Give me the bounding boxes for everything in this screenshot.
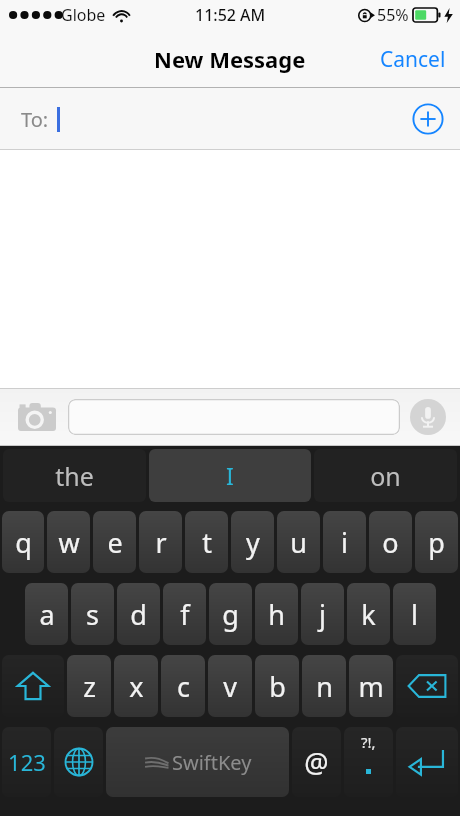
staticText: on — [370, 459, 401, 493]
staticText: c — [177, 668, 190, 705]
staticText: s — [86, 596, 99, 633]
staticText: z — [83, 668, 96, 705]
staticText: j — [319, 596, 326, 633]
button[interactable]: @ — [292, 727, 341, 797]
button[interactable]: Add contact — [412, 103, 444, 135]
button[interactable]: y — [231, 511, 274, 573]
button[interactable] — [68, 399, 400, 435]
button[interactable]: 123 — [2, 727, 51, 797]
staticText: a — [39, 596, 55, 633]
staticText: q — [15, 524, 32, 561]
staticText: r — [155, 524, 167, 561]
staticText: the — [55, 459, 94, 493]
staticText: x — [129, 668, 144, 705]
staticText: Cancel — [380, 45, 446, 74]
staticText: 11:52 AM — [195, 4, 266, 26]
button[interactable]: f — [163, 583, 206, 645]
staticText: h — [268, 596, 285, 633]
button[interactable]: u — [277, 511, 320, 573]
button[interactable]: s — [71, 583, 114, 645]
staticText: f — [180, 596, 190, 633]
button[interactable]: the — [3, 449, 146, 502]
staticText: @ — [304, 744, 329, 781]
button[interactable]: i — [323, 511, 366, 573]
button[interactable]: j — [301, 583, 344, 645]
button[interactable]: Backspace — [396, 655, 458, 717]
button[interactable]: Voice input — [410, 399, 446, 435]
staticText: w — [58, 524, 80, 561]
staticText: g — [222, 596, 239, 633]
staticText: v — [223, 668, 237, 705]
button[interactable]: h — [255, 583, 298, 645]
staticText: SwiftKey — [172, 749, 252, 776]
button[interactable]: r — [139, 511, 182, 573]
staticText: l — [411, 596, 418, 633]
staticText: t — [202, 524, 212, 561]
button[interactable]: o — [369, 511, 412, 573]
staticText: I — [226, 460, 234, 491]
staticText: p — [428, 524, 445, 561]
staticText: e — [107, 524, 123, 561]
staticText: i — [341, 524, 348, 561]
staticText: d — [130, 596, 147, 633]
button[interactable]: Shift — [2, 655, 64, 717]
button[interactable]: on — [314, 449, 457, 502]
staticText: 55% — [377, 4, 409, 26]
button[interactable]: q — [2, 511, 44, 573]
staticText: Globe — [61, 4, 106, 26]
button[interactable]: Change language — [54, 727, 103, 797]
staticText: b — [269, 668, 286, 705]
staticText: u — [290, 524, 307, 561]
button[interactable]: Cancel — [366, 35, 460, 84]
button[interactable]: I — [149, 449, 311, 502]
button[interactable]: d — [117, 583, 160, 645]
button[interactable]: Space — [106, 727, 289, 797]
button[interactable]: Enter — [396, 727, 458, 797]
button[interactable]: c — [161, 655, 205, 717]
button[interactable]: v — [208, 655, 252, 717]
staticText: To: — [21, 106, 49, 133]
button[interactable]: a — [25, 583, 68, 645]
button[interactable]: Take photo — [16, 400, 58, 434]
button[interactable]: z — [67, 655, 111, 717]
staticText: ?!, — [361, 732, 376, 752]
button[interactable]: k — [347, 583, 390, 645]
staticText: k — [361, 596, 376, 633]
staticText: m — [358, 668, 384, 705]
button[interactable]: b — [255, 655, 299, 717]
button[interactable]: t — [185, 511, 228, 573]
button[interactable]: m — [349, 655, 393, 717]
button[interactable]: g — [209, 583, 252, 645]
staticText: New Message — [154, 44, 306, 74]
button[interactable]: p — [415, 511, 458, 573]
staticText: 123 — [8, 747, 46, 777]
button[interactable]: x — [114, 655, 158, 717]
staticText: o — [382, 524, 399, 561]
button[interactable]: l — [393, 583, 436, 645]
button[interactable]: w — [47, 511, 90, 573]
staticText: n — [316, 668, 333, 705]
button[interactable]: e — [93, 511, 136, 573]
button[interactable]: ?!, — [344, 727, 393, 797]
staticText: y — [246, 524, 260, 561]
button[interactable]: n — [302, 655, 346, 717]
